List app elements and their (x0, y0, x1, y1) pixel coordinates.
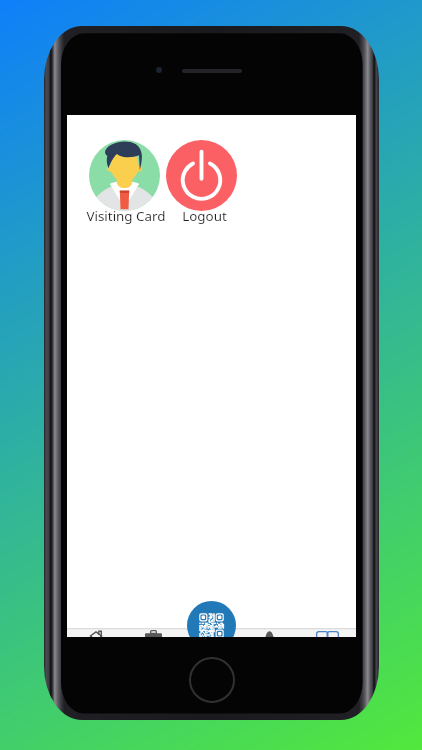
button[interactable]: Jobs (124, 628, 182, 637)
button[interactable]: Visiting Card (81, 140, 171, 229)
button[interactable]: Logout (159, 140, 249, 229)
button[interactable]: Scan QR code (187, 601, 236, 637)
button[interactable]: Scan (182, 628, 240, 637)
staticText: Logout (182, 207, 227, 225)
button[interactable]: Home (67, 628, 124, 637)
staticText: Visiting Card (86, 207, 166, 225)
button[interactable]: Dashboard (298, 628, 356, 637)
button[interactable]: Notifications (240, 628, 298, 637)
